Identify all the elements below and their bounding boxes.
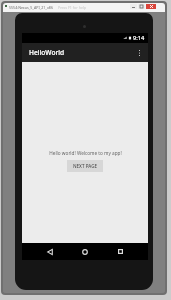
button[interactable]: Maximize xyxy=(138,4,145,9)
staticText: HelloWorld xyxy=(29,48,65,57)
button[interactable]: Recents xyxy=(111,243,129,260)
button[interactable]: Close xyxy=(146,4,156,9)
staticText: NEXT PAGE xyxy=(73,163,98,169)
button[interactable]: Back xyxy=(41,243,59,260)
button[interactable]: Home xyxy=(76,243,94,260)
button[interactable]: NEXT PAGE xyxy=(67,160,103,172)
staticText: 9:14 xyxy=(133,34,145,42)
staticText: Press F1 for help xyxy=(58,5,87,10)
button[interactable]: More options xyxy=(132,46,146,60)
staticText: 5554:Nexus_5_API_21_x86 xyxy=(9,5,53,10)
button[interactable]: Minimize xyxy=(130,4,137,9)
staticText: Hello world! Welcome to my app! xyxy=(49,150,122,156)
